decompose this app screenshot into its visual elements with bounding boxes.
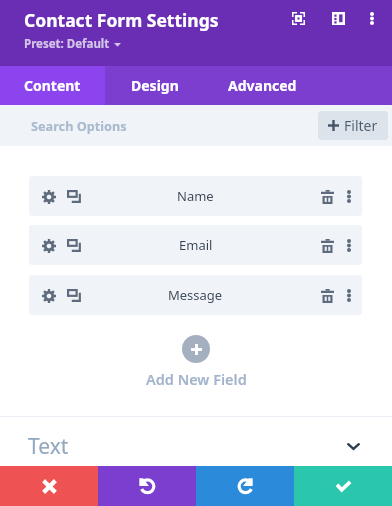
- button[interactable]: Design: [105, 66, 204, 105]
- button[interactable]: Delete: [317, 186, 338, 207]
- button[interactable]: Fullscreen preview: [286, 6, 310, 30]
- staticText: Search Options: [31, 117, 127, 134]
- button[interactable]: More options: [360, 6, 383, 30]
- button[interactable]: Settings: [29, 176, 362, 216]
- button[interactable]: Content: [0, 66, 105, 105]
- button[interactable]: Options: [340, 187, 358, 205]
- button[interactable]: Advanced: [204, 66, 321, 105]
- staticText: Add New Field: [146, 369, 247, 389]
- button[interactable]: Filter: [318, 111, 388, 140]
- button[interactable]: Options: [340, 286, 358, 304]
- button[interactable]: Settings: [29, 225, 362, 265]
- button[interactable]: Options: [340, 236, 358, 254]
- button[interactable]: Settings: [38, 186, 59, 207]
- button[interactable]: Cancel: [0, 466, 98, 506]
- button[interactable]: Settings: [38, 285, 59, 306]
- button[interactable]: Settings: [38, 235, 59, 256]
- button[interactable]: Delete: [317, 285, 338, 306]
- staticText: Name: [177, 187, 214, 205]
- button[interactable]: Settings: [29, 275, 362, 315]
- staticText: Filter: [344, 116, 378, 135]
- button[interactable]: Redo: [196, 466, 294, 506]
- staticText: Email: [179, 236, 213, 254]
- button[interactable]: Duplicate: [63, 235, 84, 256]
- button[interactable]: Text: [0, 417, 392, 466]
- button[interactable]: Delete: [317, 235, 338, 256]
- staticText: Advanced: [228, 76, 297, 95]
- button[interactable]: Layout panel: [326, 6, 350, 30]
- staticText: Message: [168, 286, 223, 304]
- button[interactable]: Duplicate: [63, 186, 84, 207]
- button[interactable]: Duplicate: [63, 285, 84, 306]
- staticText: Contact Form Settings: [24, 8, 219, 32]
- staticText: Design: [131, 76, 179, 95]
- button[interactable]: Save: [294, 466, 392, 506]
- button[interactable]: Add New Field: [0, 335, 392, 389]
- staticText: Text: [28, 432, 69, 461]
- staticText: Preset: Default: [24, 36, 110, 52]
- button[interactable]: Undo: [98, 466, 196, 506]
- staticText: Content: [24, 76, 81, 95]
